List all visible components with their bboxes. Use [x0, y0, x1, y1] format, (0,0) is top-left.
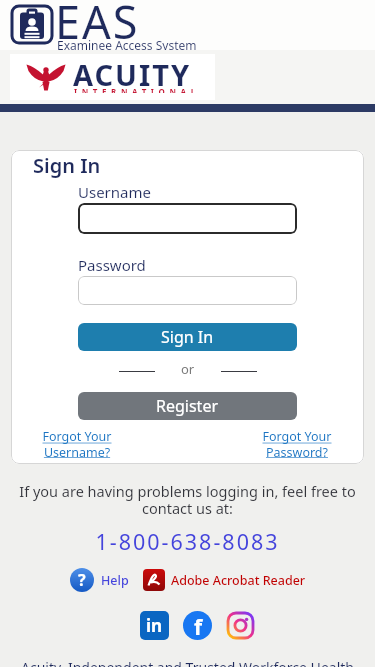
button[interactable] [78, 276, 297, 305]
staticText: Help [101, 572, 129, 589]
staticText: Password [78, 255, 146, 275]
button[interactable]: Sign In [78, 323, 297, 351]
staticText: Register [156, 395, 219, 417]
button[interactable]: f [183, 611, 212, 640]
staticText: EAS [55, 0, 140, 41]
button[interactable]: Adobe Acrobat Reader [143, 569, 306, 591]
button[interactable]: 1-800-638-8083 [0, 527, 375, 556]
button[interactable] [226, 611, 255, 640]
staticText: Username [78, 182, 151, 202]
staticText: f [194, 613, 203, 640]
button[interactable]: Forgot Your Password? [262, 428, 332, 460]
button[interactable]: ? [70, 568, 129, 592]
button[interactable]: Register [78, 392, 297, 420]
staticText: Examinee Access System [57, 37, 197, 53]
staticText: If you are having problems logging in, f… [0, 481, 375, 518]
staticText: INTERNATIONAL [74, 86, 200, 93]
staticText: Sign In [161, 326, 214, 348]
staticText: or [181, 360, 195, 375]
staticText: ? [78, 569, 86, 591]
button[interactable]: in [140, 611, 169, 640]
button[interactable] [78, 203, 297, 234]
staticText: in [146, 614, 163, 637]
staticText: Acuity, Independent and Trusted Workforc… [0, 658, 375, 667]
button[interactable]: Forgot Your Username? [42, 428, 112, 460]
staticText: Adobe Acrobat Reader [171, 572, 306, 589]
staticText: ACUITY [73, 55, 192, 94]
staticText: Sign In [33, 152, 101, 179]
